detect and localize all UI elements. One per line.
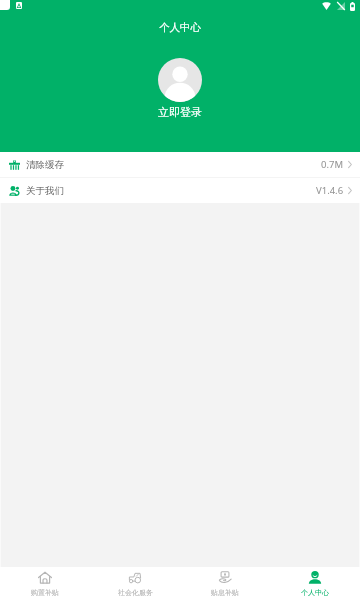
staticText: V1.4.6: [316, 184, 344, 197]
button[interactable]: 社会化服务: [90, 567, 180, 600]
button[interactable]: 清除缓存: [0, 152, 360, 177]
button[interactable]: 个人中心: [270, 567, 360, 600]
button[interactable]: 立即登录: [142, 58, 218, 119]
staticText: 个人中心: [159, 21, 201, 34]
staticText: 0.7M: [321, 158, 344, 171]
staticText: 清除缓存: [26, 159, 64, 171]
button[interactable]: 关于我们: [0, 178, 360, 203]
button[interactable]: 贴息补贴: [180, 567, 270, 600]
staticText: 社会化服务: [118, 588, 153, 597]
staticText: 购置补贴: [31, 588, 59, 597]
staticText: 个人中心: [301, 588, 329, 597]
staticText: 贴息补贴: [211, 588, 239, 597]
staticText: 关于我们: [26, 185, 64, 197]
staticText: 立即登录: [158, 105, 202, 119]
button[interactable]: 购置补贴: [0, 567, 90, 600]
